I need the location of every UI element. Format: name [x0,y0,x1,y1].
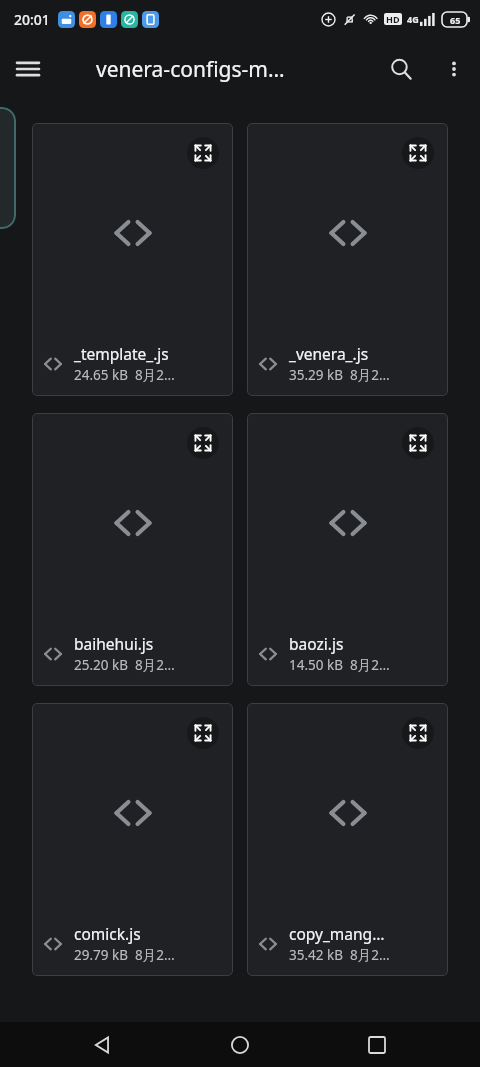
staticText: 14.50 kB 8月2… [289,656,390,674]
staticText: 24.65 kB 8月2… [74,366,175,384]
button[interactable]: Expand preview [247,123,448,396]
staticText: venera-configs-m… [96,55,285,84]
staticText: 4G [407,13,419,25]
button[interactable]: Expand preview [32,703,233,976]
button[interactable]: More options [428,43,480,95]
button[interactable]: Expand preview [32,413,233,686]
button[interactable]: Drawer handle [0,107,16,229]
button[interactable]: Open navigation drawer [0,41,56,97]
button[interactable]: Expand preview [187,717,219,749]
button[interactable]: Expand preview [402,717,434,749]
staticText: baihehui.js [74,633,154,654]
staticText: _venera_.js [289,343,369,364]
staticText: 20:01 [14,10,50,29]
staticText: 29.79 kB 8月2… [74,946,175,964]
button[interactable]: Expand preview [402,137,434,169]
button[interactable]: Expand preview [187,427,219,459]
staticText: copy_mang… [289,923,385,944]
button[interactable]: Expand preview [247,703,448,976]
button[interactable]: Home [206,1022,274,1067]
staticText: 25.20 kB 8月2… [74,656,175,674]
button[interactable]: Expand preview [32,123,233,396]
button[interactable]: Back [69,1022,137,1067]
staticText: baozi.js [289,633,344,654]
staticText: 35.42 kB 8月2… [289,946,390,964]
button[interactable]: Recent apps [343,1022,411,1067]
button[interactable]: Search [374,42,428,96]
button[interactable]: Expand preview [247,413,448,686]
button[interactable]: Expand preview [187,137,219,169]
staticText: comick.js [74,923,141,944]
staticText: 35.29 kB 8月2… [289,366,390,384]
staticText: _template_.js [74,343,169,364]
button[interactable]: Expand preview [402,427,434,459]
staticText: HD [386,13,400,25]
staticText: 65 [450,14,461,26]
